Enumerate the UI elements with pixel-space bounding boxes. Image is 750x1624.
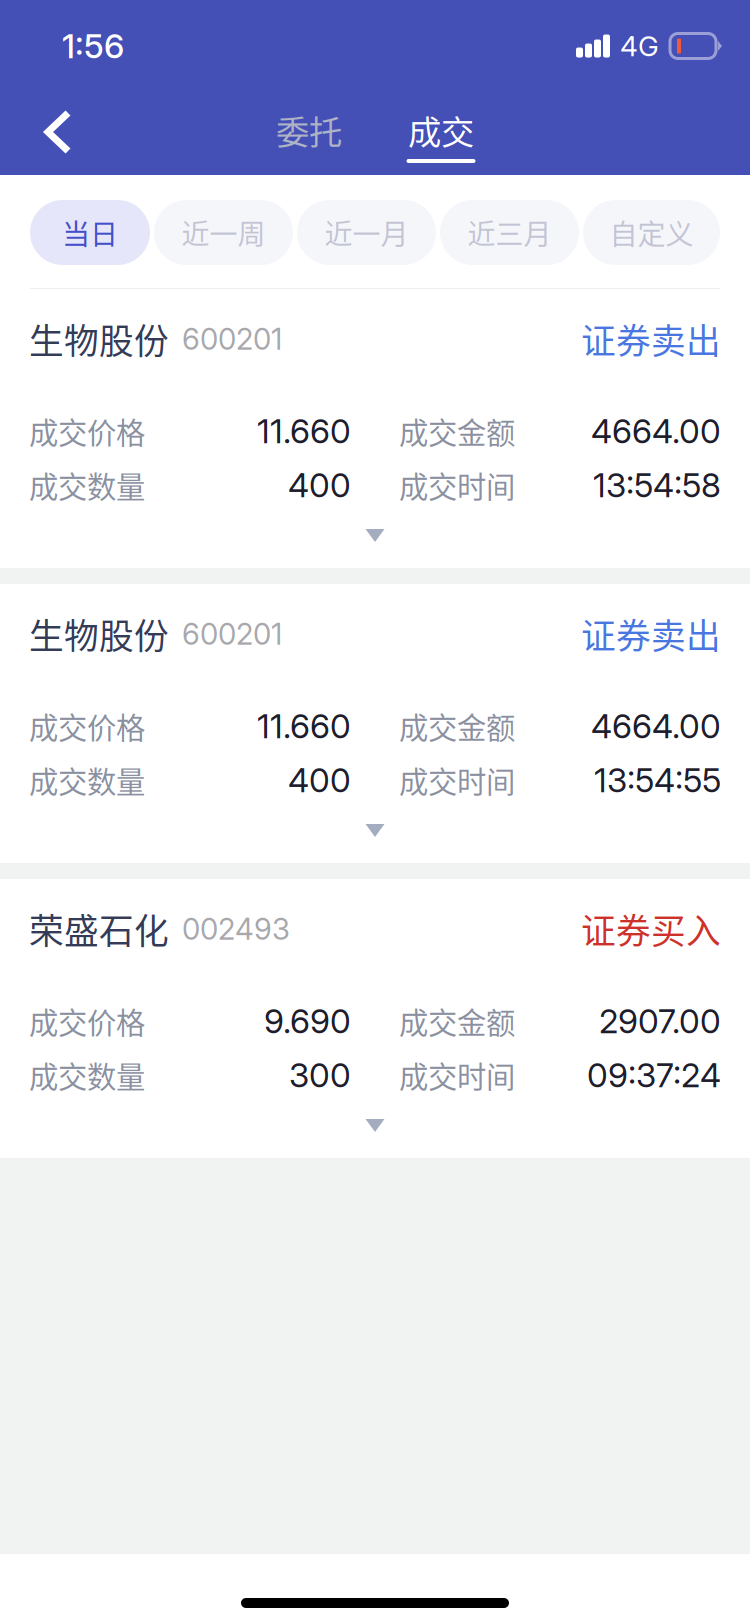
staticText: 证券卖出: [581, 314, 721, 364]
button[interactable]: 近三月: [440, 200, 579, 265]
staticText: 荣盛石化: [29, 904, 169, 954]
staticText: 13:54:55: [594, 760, 721, 800]
staticText: 2907.00: [599, 1001, 721, 1041]
staticText: 4664.00: [591, 411, 721, 451]
staticText: 002493: [182, 911, 290, 947]
staticText: 成交价格: [29, 410, 145, 452]
button[interactable]: 当日: [30, 200, 150, 265]
button[interactable]: 荣盛石化: [0, 879, 750, 1158]
button[interactable]: 近一月: [297, 200, 436, 265]
staticText: 1:56: [62, 26, 124, 66]
staticText: 成交金额: [399, 410, 515, 452]
staticText: 近一月: [324, 212, 408, 253]
button[interactable]: 委托: [274, 88, 343, 163]
staticText: 自定义: [609, 212, 693, 253]
staticText: 09:37:24: [587, 1055, 721, 1095]
button[interactable]: 自定义: [583, 200, 720, 265]
staticText: 成交数量: [29, 1054, 145, 1096]
button[interactable]: 生物股份: [0, 289, 750, 568]
staticText: 委托: [276, 106, 342, 154]
button[interactable]: 近一周: [154, 200, 293, 265]
staticText: 成交时间: [399, 759, 515, 801]
staticText: 600201: [182, 616, 282, 652]
staticText: 400: [288, 465, 351, 505]
staticText: 成交价格: [29, 1000, 145, 1042]
staticText: 4664.00: [591, 706, 721, 746]
staticText: 300: [289, 1055, 351, 1095]
staticText: 600201: [182, 321, 282, 357]
staticText: 13:54:58: [593, 465, 721, 505]
button[interactable]: 生物股份: [0, 584, 750, 863]
staticText: 成交价格: [29, 705, 145, 747]
button[interactable]: 成交: [406, 88, 475, 163]
staticText: 11.660: [257, 706, 351, 746]
staticText: 成交数量: [29, 464, 145, 506]
staticText: 成交金额: [399, 1000, 515, 1042]
staticText: 证券买入: [581, 904, 721, 954]
staticText: 成交时间: [399, 1054, 515, 1096]
staticText: 4G: [620, 29, 659, 63]
staticText: 400: [288, 760, 351, 800]
staticText: 生物股份: [29, 314, 169, 364]
staticText: 11.660: [257, 411, 351, 451]
staticText: 当日: [62, 212, 118, 253]
staticText: 生物股份: [29, 609, 169, 659]
staticText: 成交金额: [399, 705, 515, 747]
staticText: 证券卖出: [581, 609, 721, 659]
staticText: 成交: [408, 106, 474, 154]
staticText: 9.690: [264, 1001, 351, 1041]
staticText: 近一周: [181, 212, 265, 253]
button[interactable]: Back: [0, 88, 95, 175]
staticText: 近三月: [467, 212, 551, 253]
staticText: 成交时间: [399, 464, 515, 506]
staticText: 成交数量: [29, 759, 145, 801]
